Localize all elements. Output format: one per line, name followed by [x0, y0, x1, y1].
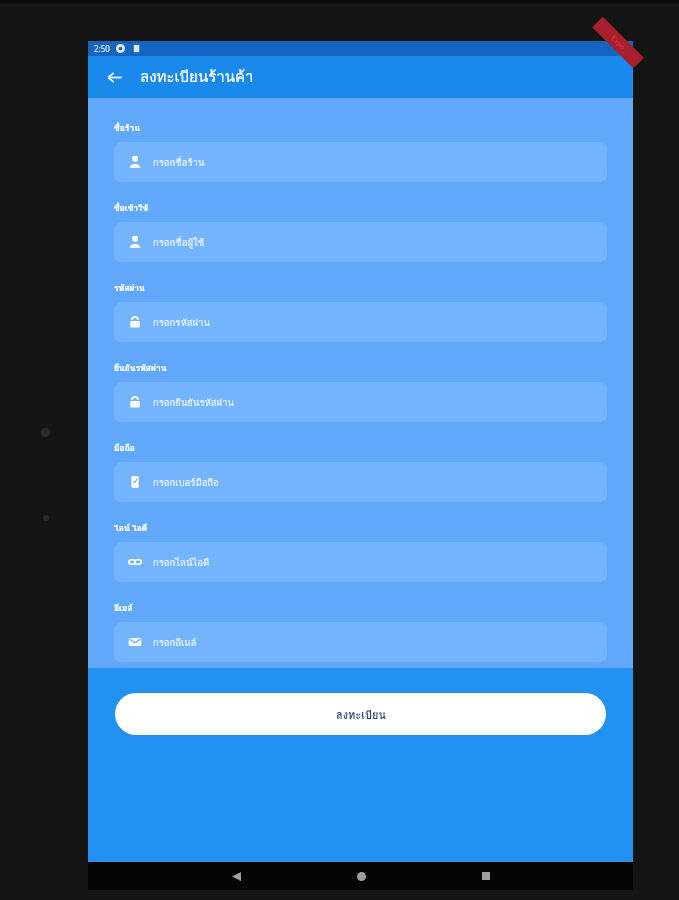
staticText: กรอกไลน์ไอดี [153, 555, 210, 570]
staticText: ไลน์ ไอดี [114, 521, 148, 535]
button[interactable]: กรอกเบอร์มือถือ [114, 462, 607, 502]
button[interactable]: กรอกอีเมล์ [114, 622, 607, 662]
button[interactable]: Back [223, 863, 249, 889]
staticText: อีเมล์ [114, 601, 133, 615]
button[interactable]: Home [348, 863, 374, 889]
staticText: มือถือ [114, 441, 135, 455]
staticText: กรอกชื่อผู้ใช้ [153, 235, 205, 250]
staticText: กรอกชื่อร้าน [153, 155, 205, 170]
button[interactable]: ลงทะเบียน [115, 693, 606, 735]
staticText: ลงทะเบียน [336, 706, 386, 723]
staticText: ยืนยันรหัสผ่าน [114, 361, 167, 375]
button[interactable]: Back [96, 59, 132, 95]
staticText: ลงทะเบียนร้านค้า [140, 65, 254, 89]
staticText: Expo [608, 34, 628, 53]
button[interactable]: Recents [473, 863, 499, 889]
staticText: รหัสผ่าน [114, 281, 145, 295]
staticText: กรอกเบอร์มือถือ [153, 475, 219, 490]
staticText: กรอกยืนยันรหัสผ่าน [153, 395, 234, 410]
button[interactable]: กรอกไลน์ไอดี [114, 542, 607, 582]
staticText: 2:50 [94, 43, 110, 54]
staticText: กรอกรหัสผ่าน [153, 315, 210, 330]
button[interactable]: กรอกชื่อร้าน [114, 142, 607, 182]
button[interactable]: กรอกยืนยันรหัสผ่าน [114, 382, 607, 422]
button[interactable]: กรอกรหัสผ่าน [114, 302, 607, 342]
button[interactable]: กรอกชื่อผู้ใช้ [114, 222, 607, 262]
staticText: ชื่อร้าน [114, 121, 141, 135]
staticText: ชื่อเข้าใช้ [114, 201, 149, 215]
staticText: กรอกอีเมล์ [153, 635, 197, 650]
